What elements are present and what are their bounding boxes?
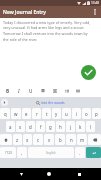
button[interactable]: v [44,134,54,145]
button[interactable]: Recents [72,168,86,180]
button[interactable]: d [26,121,35,132]
staticText: o [85,111,88,117]
button[interactable]: p [92,108,101,119]
staticText: y [55,111,58,117]
button[interactable]: m [77,134,87,145]
button[interactable]: Shift [0,134,12,145]
staticText: e [25,111,28,117]
staticText: f [40,124,42,130]
staticText: Today I discovered a new type of emerly.… [3,20,91,42]
button[interactable]: r [32,108,41,119]
button[interactable]: Space [28,147,74,158]
staticText: u [65,111,68,117]
staticText: m [80,137,85,143]
button[interactable]: y [52,108,61,119]
staticText: k [79,124,82,130]
staticText: z [16,137,19,143]
button[interactable]: z [13,134,22,145]
staticText: I [18,88,20,95]
staticText: U [29,88,33,94]
staticText: b [59,137,62,143]
staticText: g [49,124,52,130]
staticText: t [46,111,48,117]
button[interactable]: . [75,147,85,158]
button[interactable]: q [0,108,10,119]
staticText: d [29,124,32,130]
staticText: ?123 [5,151,12,155]
staticText: . [79,150,81,156]
button[interactable]: j [66,121,75,132]
staticText: r [36,111,38,117]
button[interactable]: c [33,134,43,145]
button[interactable]: Format B [2,85,13,97]
button[interactable]: Save entry [81,65,96,80]
button[interactable]: g [46,121,55,132]
staticText: New Journal Entry [3,9,46,16]
button[interactable]: Format UL [61,85,72,97]
button[interactable]: Back [14,168,28,180]
staticText: a [9,124,12,130]
button[interactable]: Expand [1,99,8,106]
staticText: , [21,150,23,156]
staticText: s [19,124,22,130]
button[interactable]: i [72,108,81,119]
staticText: i [76,111,78,117]
staticText: B [6,88,10,94]
staticText: into the woods [41,100,65,105]
button[interactable]: a [6,121,15,132]
staticText: h [59,124,62,130]
button[interactable]: f [36,121,45,132]
button[interactable]: ?123 [0,147,16,158]
button[interactable]: w [11,108,21,119]
button[interactable]: Format S [37,85,48,97]
staticText: n [70,137,73,143]
button[interactable]: t [42,108,51,119]
button[interactable]: Format I [13,85,24,97]
staticText: x [26,137,29,143]
button[interactable]: Format AL [49,85,60,97]
button[interactable]: Format OL [72,85,83,97]
button[interactable]: x [23,134,32,145]
staticText: q [4,111,7,117]
staticText: l [90,124,92,130]
button[interactable]: l [86,121,95,132]
staticText: w [14,111,18,117]
button[interactable]: n [66,134,76,145]
button[interactable]: More options [91,8,99,16]
button[interactable]: u [62,108,71,119]
button[interactable]: Format U [25,85,36,97]
staticText: j [70,124,72,130]
button[interactable]: into the woods [36,100,65,105]
staticText: c [37,137,40,143]
button[interactable]: b [55,134,65,145]
button[interactable]: o [82,108,91,119]
button[interactable]: k [76,121,85,132]
button[interactable]: h [56,121,65,132]
button[interactable]: , [17,147,27,158]
button[interactable]: Delete [88,134,101,145]
staticText: 13:48 [91,1,100,5]
button[interactable]: Enter [86,147,101,158]
button[interactable]: e [22,108,31,119]
staticText: v [48,137,51,143]
button[interactable]: Home [42,168,56,180]
staticText: p [95,111,98,117]
button[interactable]: s [16,121,25,132]
staticText: English [46,151,56,155]
